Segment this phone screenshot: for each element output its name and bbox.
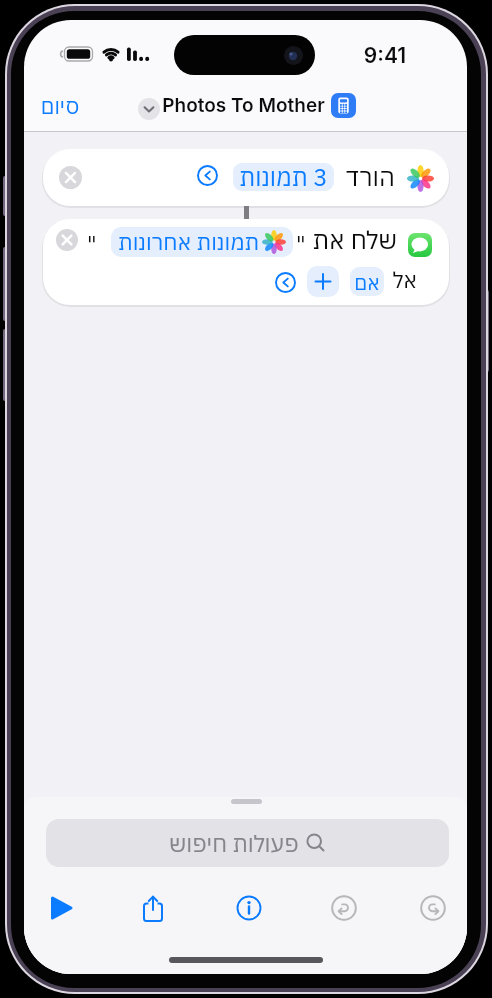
button[interactable] (275, 272, 296, 293)
button[interactable] (59, 166, 82, 189)
staticText: תמונות אחרונות (118, 227, 260, 256)
button[interactable]: פעולות חיפוש (46, 819, 449, 867)
button[interactable] (331, 895, 357, 921)
staticText: הורד (335, 160, 395, 193)
staticText: 3 תמונות (233, 163, 334, 189)
button[interactable] (331, 93, 356, 118)
button[interactable] (307, 266, 339, 297)
staticText: אל (377, 265, 417, 294)
button[interactable] (56, 229, 78, 251)
staticText: סיום (34, 92, 86, 118)
button[interactable]: 3 תמונות (233, 163, 334, 191)
button[interactable] (139, 894, 167, 922)
button[interactable] (48, 895, 74, 921)
staticText: " (296, 229, 306, 259)
button[interactable] (43, 149, 449, 206)
button[interactable] (43, 219, 449, 305)
button[interactable] (138, 98, 160, 120)
staticText: אם (350, 269, 384, 295)
button[interactable] (197, 165, 218, 186)
staticText: פעולות חיפוש (169, 828, 299, 858)
staticText: שלח את (307, 223, 397, 256)
button[interactable] (236, 895, 262, 921)
staticText: 9:41 (355, 43, 415, 68)
staticText: " (87, 229, 97, 259)
button[interactable]: תמונות אחרונות (111, 227, 293, 257)
button[interactable]: סיום (34, 92, 86, 118)
staticText: Photos To Mother (158, 94, 329, 117)
button[interactable]: אם (350, 267, 384, 296)
button[interactable] (420, 895, 446, 921)
